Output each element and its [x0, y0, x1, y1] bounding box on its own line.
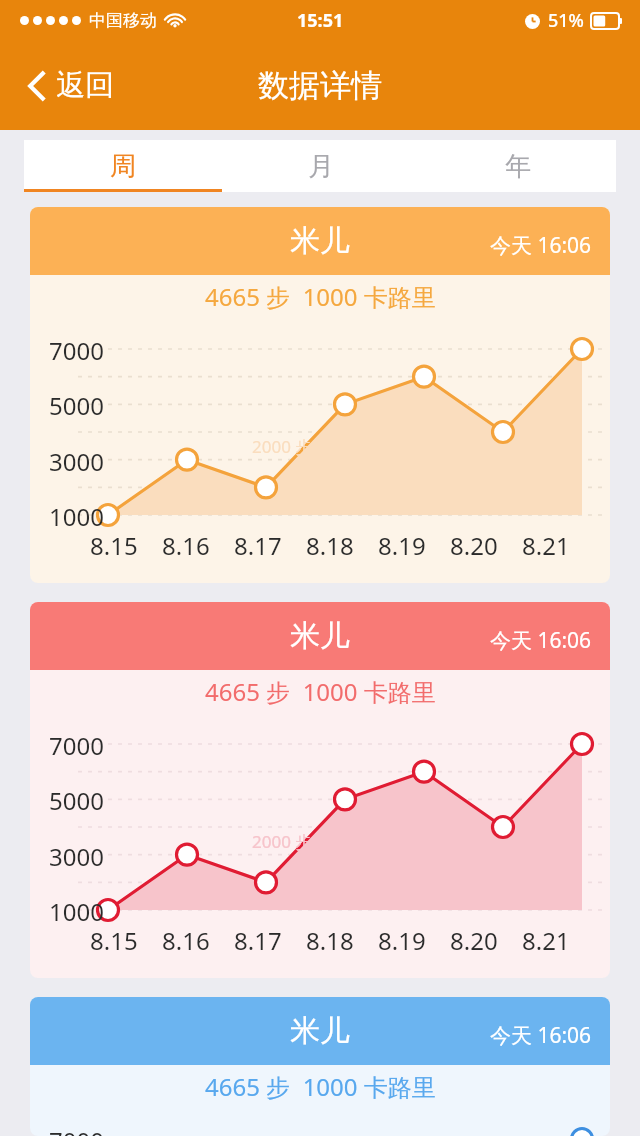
- staticText: 8.21: [522, 924, 570, 957]
- staticText: 8.15: [90, 924, 138, 957]
- staticText: 3000: [49, 445, 104, 478]
- staticText: 5000: [49, 389, 104, 422]
- staticText: 7000: [49, 334, 104, 367]
- staticText: 8.17: [234, 529, 282, 562]
- staticText: 8.18: [306, 529, 354, 562]
- staticText: 8.20: [450, 924, 498, 957]
- staticText: 2000 步: [252, 435, 313, 458]
- staticText: 8.21: [522, 529, 570, 562]
- staticText: 5000: [49, 784, 104, 817]
- staticText: 数据详情: [258, 66, 382, 105]
- button[interactable]: 米儿: [30, 602, 610, 978]
- staticText: 7000: [49, 729, 104, 762]
- staticText: 米儿: [290, 222, 350, 260]
- staticText: 51%: [548, 8, 584, 33]
- staticText: 月: [308, 150, 334, 183]
- staticText: 8.16: [162, 529, 210, 562]
- button[interactable]: 年: [419, 140, 616, 192]
- staticText: 1000: [49, 500, 104, 533]
- staticText: 3000: [49, 840, 104, 873]
- button[interactable]: 米儿: [30, 997, 610, 1136]
- staticText: 返回: [56, 67, 114, 104]
- staticText: 4665 步 1000 卡路里: [205, 280, 436, 313]
- staticText: 8.19: [378, 529, 426, 562]
- button[interactable]: 米儿: [30, 207, 610, 583]
- staticText: 8.15: [90, 529, 138, 562]
- staticText: 1000: [49, 895, 104, 928]
- staticText: 7000: [49, 1124, 104, 1136]
- button[interactable]: 周: [24, 140, 222, 192]
- staticText: 今天 16:06: [490, 1021, 592, 1050]
- staticText: 15:51: [297, 8, 344, 33]
- staticText: 8.17: [234, 924, 282, 957]
- button[interactable]: 月: [222, 140, 419, 192]
- staticText: 4665 步 1000 卡路里: [205, 1070, 436, 1103]
- staticText: 今天 16:06: [490, 626, 592, 655]
- staticText: 8.16: [162, 924, 210, 957]
- button[interactable]: 返回: [22, 59, 120, 112]
- staticText: 8.19: [378, 924, 426, 957]
- staticText: 8.18: [306, 924, 354, 957]
- staticText: 今天 16:06: [490, 231, 592, 260]
- staticText: 米儿: [290, 1012, 350, 1050]
- staticText: 4665 步 1000 卡路里: [205, 675, 436, 708]
- staticText: 中国移动: [89, 10, 157, 31]
- staticText: 米儿: [290, 617, 350, 655]
- staticText: 2000 步: [252, 830, 313, 853]
- staticText: 周: [110, 150, 136, 183]
- staticText: 8.20: [450, 529, 498, 562]
- staticText: 年: [505, 150, 531, 183]
